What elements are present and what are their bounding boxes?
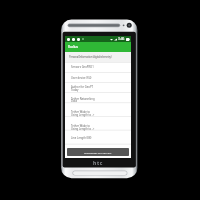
- button[interactable]: Author for GeoPT: [71, 85, 94, 89]
- staticText: Sensors GeoPRO1: [71, 65, 94, 69]
- button[interactable]: Personal Information (digital telemetry): [69, 55, 112, 59]
- staticText: Using Length to ->: [71, 127, 95, 131]
- button[interactable]: [65, 52, 131, 62]
- button[interactable]: SUBSCRIBE TO THE LIST: [67, 148, 129, 156]
- staticText: Today: [71, 88, 79, 92]
- button[interactable]: Today: [71, 88, 79, 92]
- button[interactable]: Radius: [65, 42, 131, 52]
- staticText: Author for GeoPT: [71, 85, 94, 89]
- staticText: 3:46: [118, 37, 125, 41]
- staticText: Tether Wake to: [71, 110, 90, 114]
- staticText: Data: [71, 99, 77, 103]
- button[interactable]: Tether Wake to: [71, 124, 90, 128]
- staticText: Using Length to ->: [71, 113, 95, 117]
- button[interactable]: Tether Wake to: [71, 110, 90, 114]
- staticText: Radius: [68, 45, 78, 49]
- staticText: Tether Networking: [71, 97, 95, 101]
- button[interactable]: Data: [71, 99, 77, 103]
- button[interactable]: Tether Networking: [71, 97, 95, 101]
- staticText: Personal Information (digital telemetry): [69, 55, 112, 59]
- staticText: Line Length (88): [71, 136, 92, 140]
- button[interactable]: Line Length (88): [71, 136, 92, 140]
- staticText: User device (f/4): [71, 76, 92, 80]
- staticText: SUBSCRIBE TO THE LIST: [84, 151, 112, 154]
- staticText: Tether Wake to: [71, 124, 90, 128]
- button[interactable]: Sensors GeoPRO1: [71, 65, 94, 69]
- button[interactable]: Using Length to ->: [71, 113, 95, 117]
- button[interactable]: Using Length to ->: [71, 127, 95, 131]
- button[interactable]: User device (f/4): [71, 76, 92, 80]
- staticText: htc: [93, 160, 104, 166]
